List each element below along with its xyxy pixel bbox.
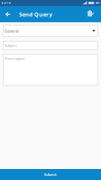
button[interactable]: Submit xyxy=(0,169,101,180)
staticText: General xyxy=(4,28,18,34)
button[interactable]: Back xyxy=(0,6,19,22)
staticText: 98% xyxy=(95,1,99,5)
staticText: Subject xyxy=(4,43,16,48)
staticText: Send Query xyxy=(19,10,52,18)
button[interactable]: Send Query xyxy=(19,6,52,22)
staticText: Description xyxy=(4,56,24,61)
staticText: 6:13 PM xyxy=(1,1,10,5)
button[interactable]: My queries xyxy=(88,6,101,22)
staticText: Submit xyxy=(44,172,57,177)
